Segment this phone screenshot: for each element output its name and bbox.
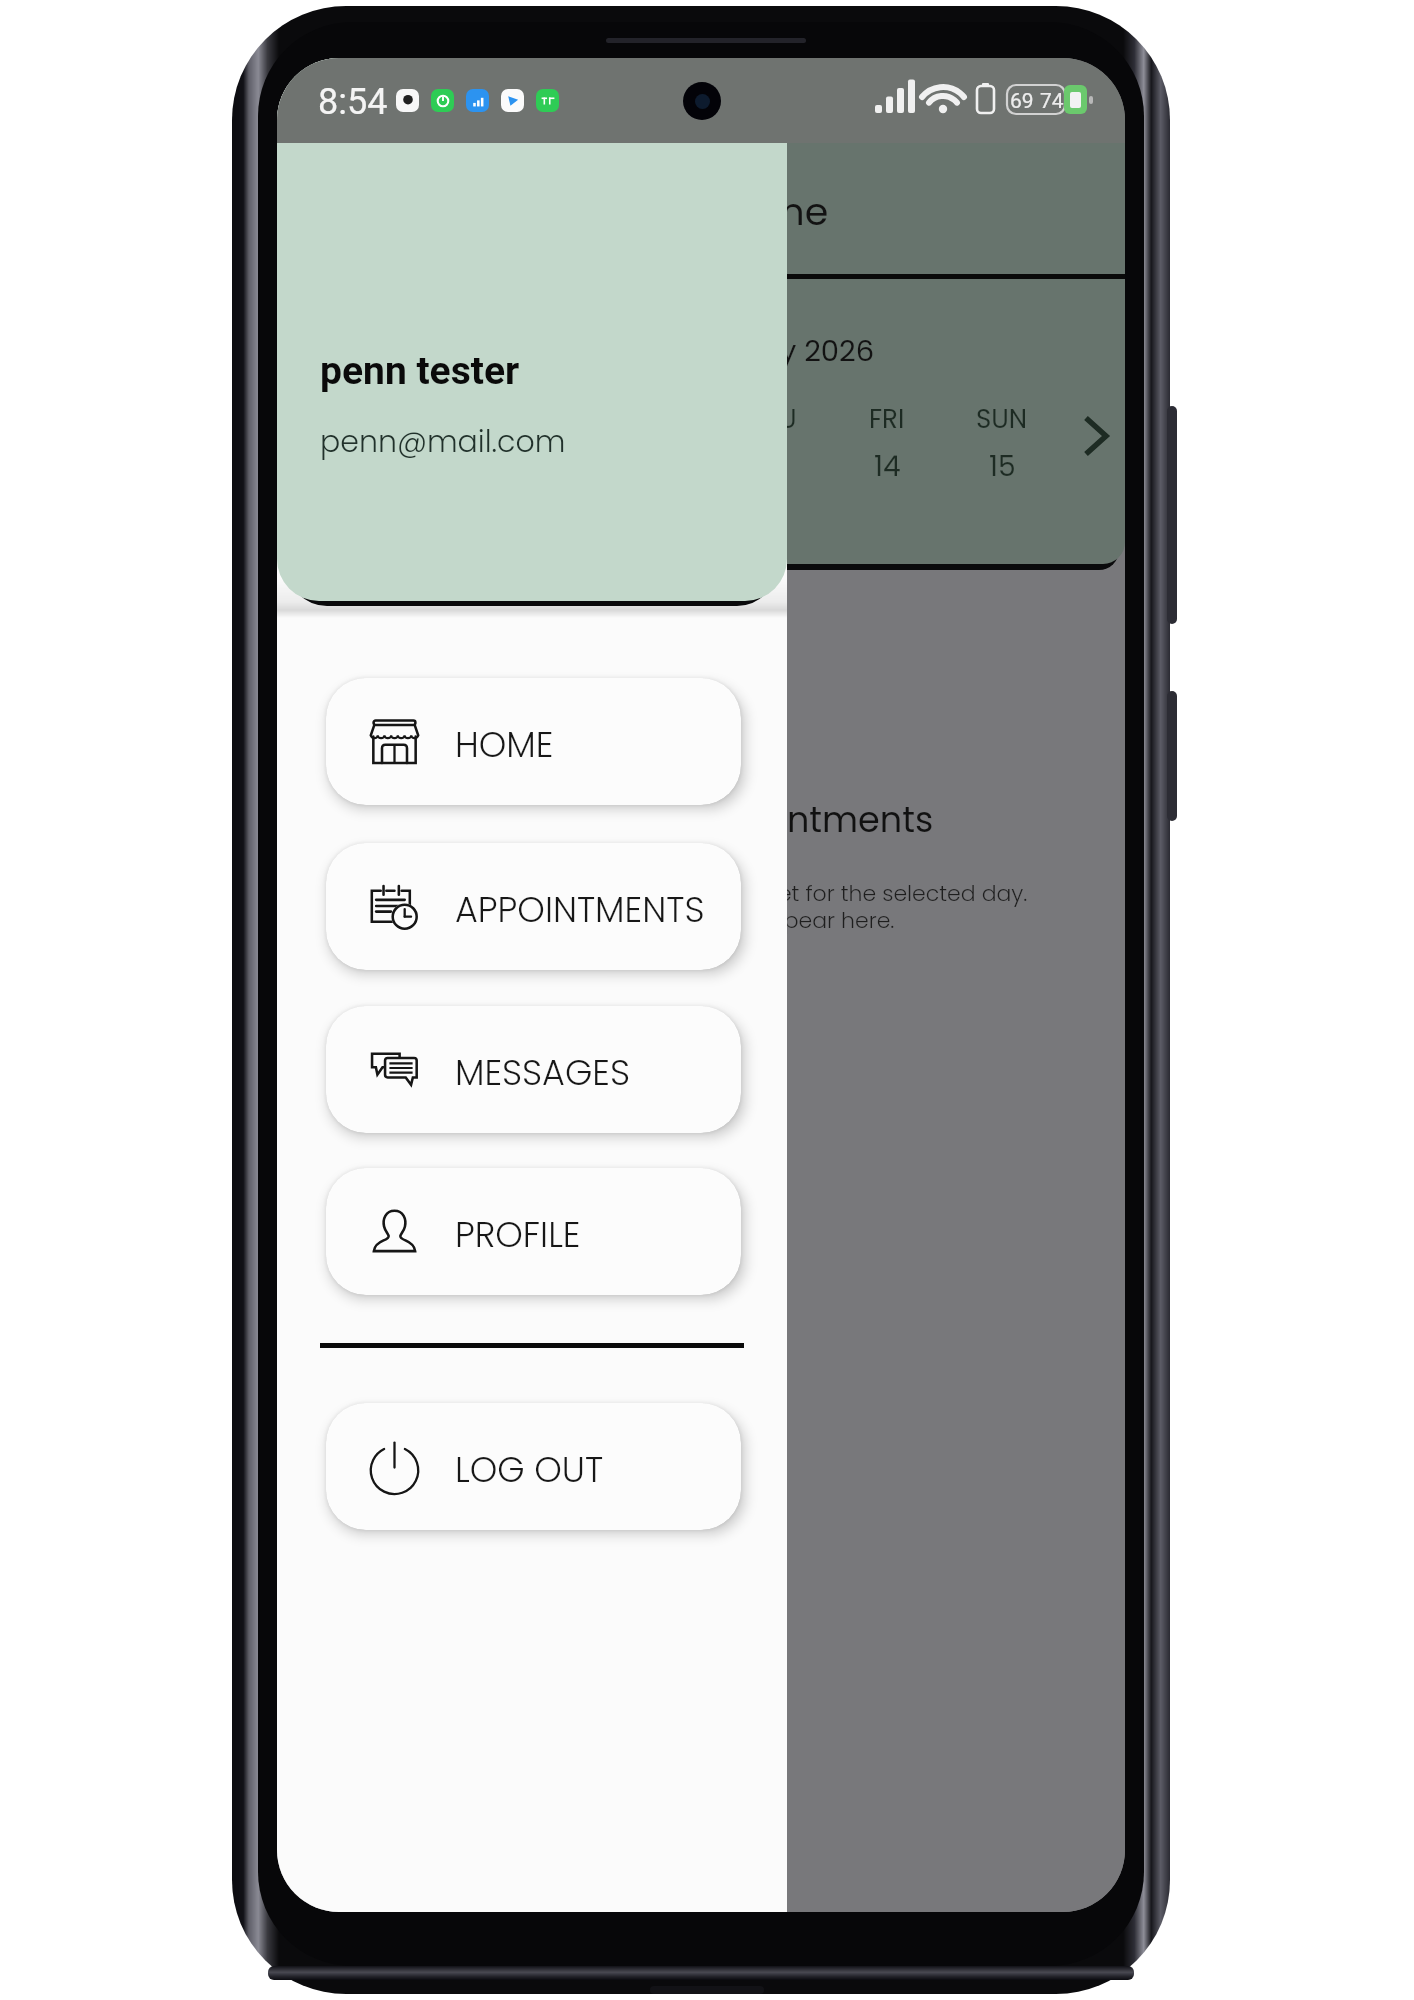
- button[interactable]: SUN: [957, 389, 1047, 499]
- staticText: MESSAGES: [455, 1048, 630, 1097]
- staticText: FRI: [869, 401, 905, 437]
- staticText: HOME: [455, 720, 554, 769]
- button[interactable]: WED: [497, 389, 587, 499]
- staticText: LOG OUT: [455, 1445, 604, 1494]
- staticText: PROFILE: [455, 1210, 581, 1259]
- staticText: July 2026: [739, 331, 875, 372]
- staticText: TUE: [405, 401, 450, 437]
- button[interactable]: MON: [277, 389, 357, 499]
- button[interactable]: Next week: [1069, 401, 1123, 471]
- button[interactable]: FRI: [842, 389, 932, 499]
- button[interactable]: Previous week: [283, 401, 337, 471]
- staticText: 74: [1040, 89, 1064, 114]
- staticText: WED: [513, 401, 571, 437]
- staticText: Home: [715, 185, 829, 238]
- staticText: MON: [281, 401, 343, 437]
- button[interactable]: LOG OUT: [326, 1403, 741, 1530]
- staticText: 15: [989, 447, 1016, 486]
- staticText: penn@mail.com: [320, 421, 566, 463]
- staticText: 11: [533, 447, 551, 486]
- staticText: 8:54: [318, 81, 388, 123]
- staticText: 10: [414, 447, 441, 486]
- staticText: 69: [1010, 89, 1034, 114]
- staticText: penn tester: [320, 348, 520, 394]
- staticText: 14: [874, 447, 901, 486]
- staticText: APPOINTMENTS: [455, 885, 705, 934]
- button[interactable]: HOME: [326, 678, 741, 805]
- staticText: No appointments yet for the selected day…: [570, 878, 1028, 935]
- button[interactable]: MESSAGES: [326, 1006, 741, 1133]
- button[interactable]: APPOINTMENTS: [326, 843, 741, 970]
- button[interactable]: THU: [727, 389, 817, 499]
- button[interactable]: PROFILE: [326, 1168, 741, 1295]
- staticText: Appointments: [685, 795, 934, 844]
- button[interactable]: TUE: [382, 389, 472, 499]
- staticText: SUN: [976, 401, 1028, 437]
- staticText: THU: [747, 401, 797, 437]
